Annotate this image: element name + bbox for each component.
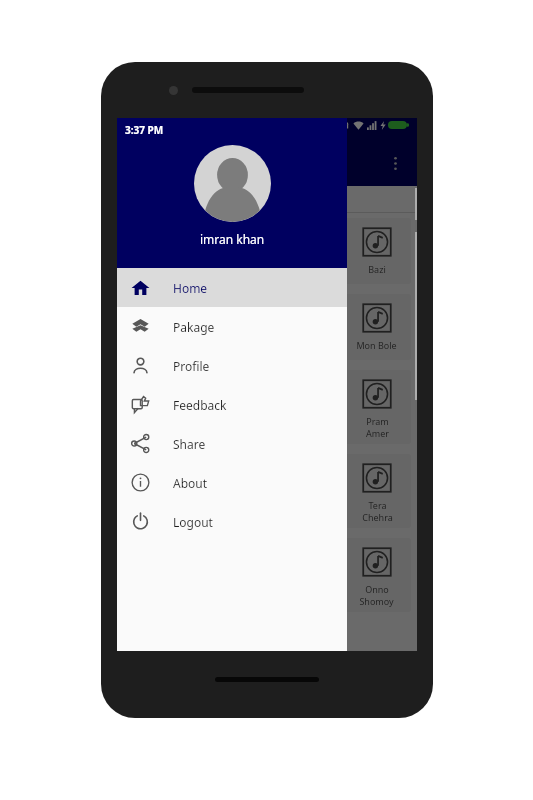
button[interactable]: Mon Bole (342, 294, 411, 360)
staticText: About (173, 475, 208, 491)
button[interactable]: Mon Bole (196, 294, 265, 360)
staticText: Amer (366, 427, 389, 439)
button[interactable]: Tera (342, 454, 411, 528)
button[interactable]: About (117, 463, 347, 502)
button[interactable]: Onno (342, 538, 411, 612)
button[interactable]: Tera (123, 454, 192, 528)
button[interactable]: Share (117, 424, 347, 463)
staticText: Bazi (368, 263, 386, 275)
staticText: Bazi (295, 263, 313, 275)
button[interactable]: Bazi (123, 218, 192, 284)
staticText: Bazi (149, 263, 167, 275)
button[interactable]: More options (382, 150, 408, 176)
staticText: Pram (366, 415, 389, 427)
button[interactable]: Pram (196, 370, 265, 444)
button[interactable]: Tera (196, 454, 265, 528)
staticText: Amer (147, 427, 170, 439)
button[interactable]: Feedback (117, 385, 347, 424)
staticText: Chehra (362, 511, 393, 523)
button[interactable]: Mon Bole (269, 294, 338, 360)
staticText: Onno (365, 583, 389, 595)
staticText: Profile (173, 358, 210, 374)
button[interactable]: Pakage (117, 307, 347, 346)
button[interactable]: Bazi (342, 218, 411, 284)
staticText: Feedback (173, 397, 227, 413)
button[interactable]: Profile (117, 346, 347, 385)
staticText: 3:37 PM (125, 123, 164, 137)
button[interactable]: Mon Bole (123, 294, 192, 360)
staticText: Bazi (222, 263, 240, 275)
button[interactable]: Logout (117, 502, 347, 541)
button[interactable]: Pram (123, 370, 192, 444)
staticText: 3:37 PM (125, 118, 164, 132)
button[interactable]: Pram (342, 370, 411, 444)
staticText: Shomoy (359, 595, 394, 607)
staticText: Home (173, 280, 208, 296)
staticText: Chehra (143, 511, 174, 523)
staticText: imran khan (200, 231, 265, 247)
staticText: Pakage (173, 319, 215, 335)
staticText: Share (173, 436, 206, 452)
staticText: Logout (173, 514, 213, 530)
button[interactable]: Home (117, 268, 347, 307)
staticText: Mon Bole (356, 339, 397, 351)
staticText: Tera (368, 499, 387, 511)
button[interactable]: Bazi (269, 218, 338, 284)
button[interactable]: Bazi (196, 218, 265, 284)
